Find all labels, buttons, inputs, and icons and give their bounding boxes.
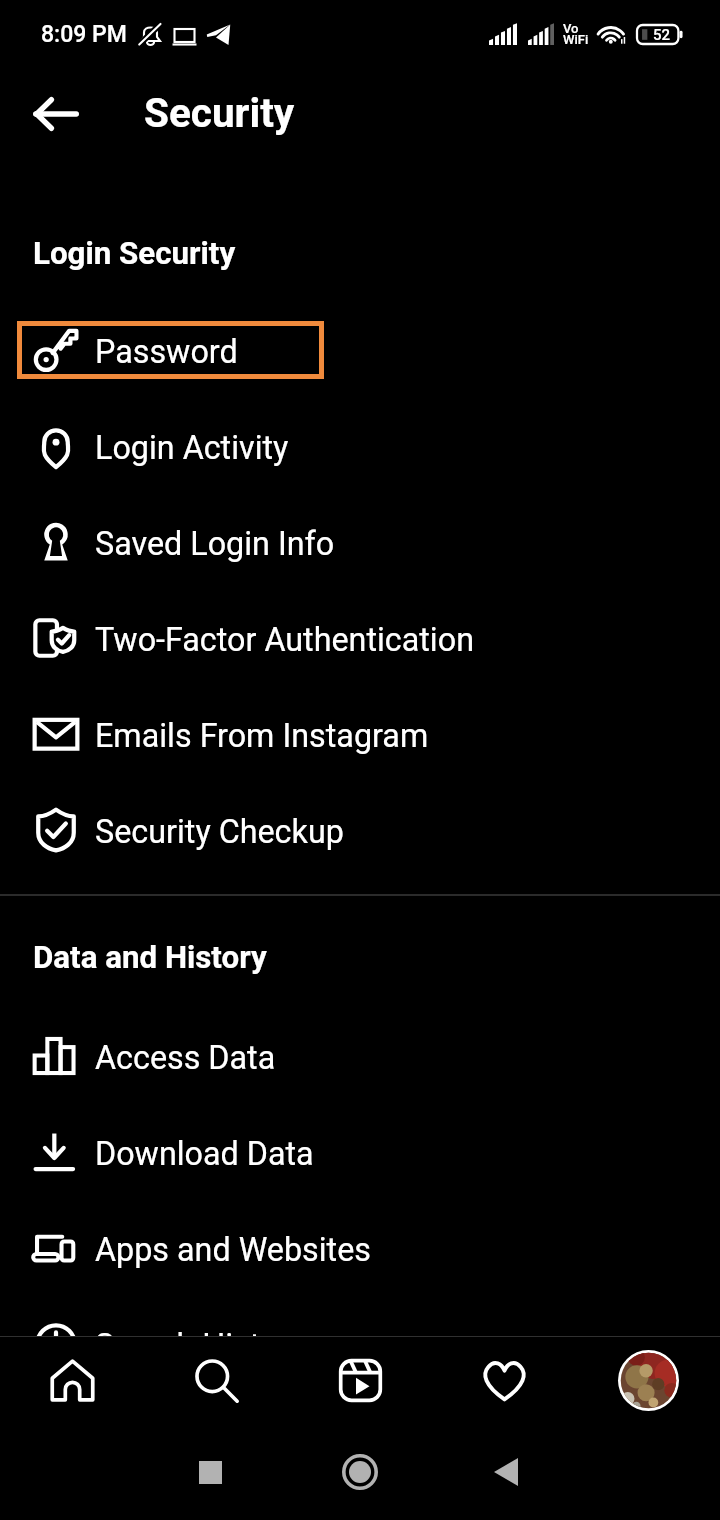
button[interactable]: Back	[14, 72, 98, 156]
button[interactable]: Reels	[288, 1336, 432, 1424]
button[interactable]: Home	[0, 1336, 144, 1424]
button[interactable]: Profile	[576, 1336, 720, 1424]
button[interactable]: Login Activity	[0, 398, 720, 494]
staticText: Saved Login Info	[95, 525, 335, 563]
button[interactable]: Apps and Websites	[0, 1200, 720, 1296]
staticText: Data and History	[33, 939, 267, 976]
staticText: Login Security	[33, 235, 236, 272]
button[interactable]: Activity	[432, 1336, 576, 1424]
staticText: Vo	[563, 21, 579, 36]
button[interactable]: Saved Login Info	[0, 494, 720, 590]
staticText: Two-Factor Authentication	[95, 621, 474, 659]
staticText: Download Data	[95, 1135, 314, 1173]
staticText: Access Data	[95, 1039, 276, 1077]
staticText: 8:09 PM	[41, 21, 127, 48]
button[interactable]: Security Checkup	[0, 782, 720, 878]
button[interactable]: Download Data	[0, 1104, 720, 1200]
staticText: Search History	[95, 1327, 305, 1365]
button[interactable]: Emails From Instagram	[0, 686, 720, 782]
button[interactable]: Password	[0, 302, 720, 398]
staticText: WiFi	[563, 32, 589, 47]
button[interactable]: Search History	[0, 1296, 720, 1392]
staticText: Security	[144, 89, 295, 136]
button[interactable]: Back	[471, 1437, 541, 1507]
staticText: Password	[95, 333, 238, 371]
staticText: Security Checkup	[95, 813, 344, 851]
button[interactable]: Home	[325, 1437, 395, 1507]
staticText: Emails From Instagram	[95, 717, 429, 755]
staticText: Login Activity	[95, 429, 289, 467]
button[interactable]: Recents	[175, 1437, 245, 1507]
staticText: 52	[653, 26, 671, 44]
staticText: Apps and Websites	[95, 1231, 371, 1269]
button[interactable]: Two-Factor Authentication	[0, 590, 720, 686]
button[interactable]: Access Data	[0, 1008, 720, 1104]
button[interactable]: Search	[144, 1336, 288, 1424]
